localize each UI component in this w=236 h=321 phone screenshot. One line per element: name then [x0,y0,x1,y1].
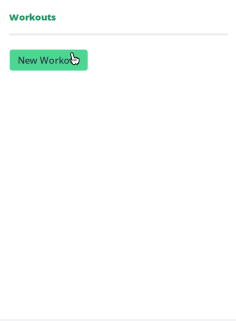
staticText: New Workout [18,54,80,66]
staticText: Workouts [9,11,56,23]
button[interactable]: New Workout [10,50,88,71]
